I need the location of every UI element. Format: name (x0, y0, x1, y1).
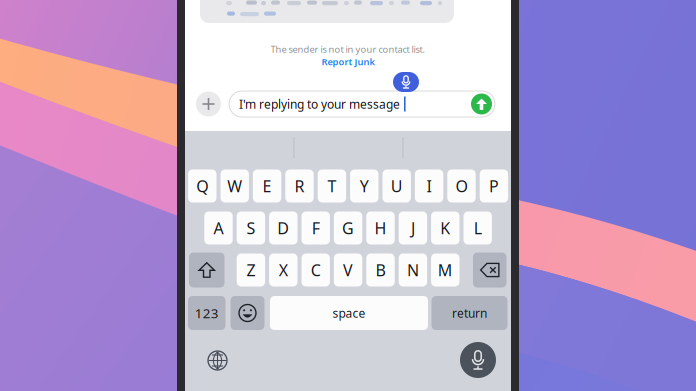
staticText: C (311, 259, 321, 281)
button[interactable]: Delete (473, 252, 506, 287)
staticText: B (375, 259, 385, 281)
button[interactable]: E (253, 169, 281, 202)
button[interactable]: J (399, 211, 427, 244)
button[interactable]: Report Junk (315, 55, 380, 68)
staticText: Q (196, 175, 208, 197)
staticText: N (407, 259, 419, 281)
button[interactable]: Emoji (230, 296, 264, 330)
button[interactable]: U (382, 169, 411, 202)
button[interactable]: Dictate (460, 342, 496, 378)
button[interactable]: Shift (189, 252, 224, 287)
staticText: U (391, 175, 403, 197)
staticText: J (411, 217, 415, 239)
button[interactable]: S (237, 211, 265, 244)
staticText: 123 (195, 304, 219, 322)
button[interactable]: I (415, 169, 443, 202)
staticText: D (277, 217, 289, 239)
staticText: F (312, 217, 320, 239)
button[interactable]: X (269, 253, 297, 286)
button[interactable]: 123 (188, 296, 225, 330)
button[interactable]: H (366, 211, 395, 244)
button[interactable]: Z (237, 253, 265, 286)
staticText: K (440, 217, 450, 239)
button[interactable]: G (334, 211, 362, 244)
staticText: Z (246, 259, 255, 281)
button[interactable]: W (220, 169, 249, 202)
staticText: The sender is not in your contact list. (270, 43, 425, 55)
staticText: Y (360, 175, 369, 197)
staticText: space (332, 305, 365, 321)
button[interactable]: D (269, 211, 297, 244)
button[interactable]: O (447, 169, 476, 202)
button[interactable]: N (399, 253, 427, 286)
staticText: R (294, 175, 304, 197)
button[interactable]: Q (188, 169, 216, 202)
staticText: H (374, 217, 386, 239)
staticText: I'm replying to your message (239, 96, 400, 112)
button[interactable]: A (204, 211, 233, 244)
button[interactable]: P (480, 169, 508, 202)
staticText: G (342, 217, 354, 239)
staticText: Report Junk (321, 55, 374, 68)
staticText: L (474, 217, 482, 239)
button[interactable]: Y (350, 169, 378, 202)
staticText: X (279, 259, 288, 281)
staticText: return (452, 305, 487, 321)
button[interactable]: T (318, 169, 346, 202)
button[interactable]: C (301, 253, 330, 286)
button[interactable]: space (270, 296, 428, 330)
staticText: V (343, 259, 353, 281)
button[interactable]: return (431, 296, 507, 330)
staticText: S (246, 217, 255, 239)
staticText: P (489, 175, 499, 197)
staticText: O (455, 175, 467, 197)
staticText: T (327, 175, 336, 197)
button[interactable]: Next keyboard (205, 348, 230, 373)
button[interactable]: Add attachment (196, 91, 221, 116)
staticText: I (427, 175, 432, 197)
staticText: E (263, 175, 272, 197)
staticText: A (213, 217, 223, 239)
staticText: M (438, 259, 453, 281)
button[interactable]: M (431, 253, 459, 286)
staticText: W (227, 175, 242, 197)
button[interactable]: Dictate (393, 72, 419, 92)
button[interactable]: V (334, 253, 362, 286)
button[interactable]: Send (471, 93, 492, 114)
button[interactable]: B (366, 253, 395, 286)
button[interactable]: K (431, 211, 459, 244)
button[interactable]: L (463, 211, 492, 244)
button[interactable]: R (285, 169, 314, 202)
button[interactable]: F (301, 211, 330, 244)
